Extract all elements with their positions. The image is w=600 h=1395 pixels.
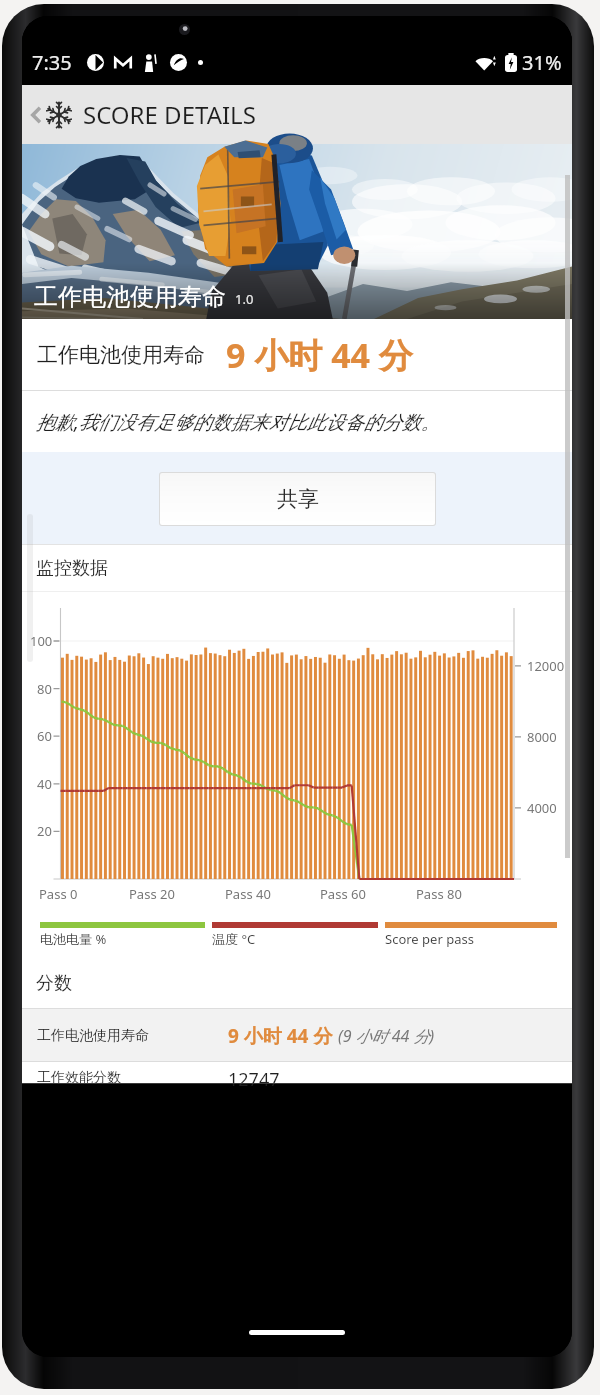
- staticText: 工作电池使用寿命: [34, 282, 226, 312]
- staticText: 监控数据: [36, 557, 108, 580]
- staticText: 31%: [522, 49, 562, 76]
- staticText: 抱歉,我们没有足够的数据来对比此设备的分数。: [36, 409, 440, 435]
- staticText: 100: [30, 632, 53, 650]
- staticText: 12000: [527, 657, 565, 675]
- staticText: 4000: [527, 799, 557, 817]
- staticText: SCORE DETAILS: [83, 98, 256, 131]
- staticText: Pass 60: [320, 885, 366, 903]
- staticText: 分数: [36, 972, 72, 995]
- button[interactable]: 工作电池使用寿命: [22, 1009, 572, 1062]
- staticText: (9 小时 44 分): [338, 1025, 435, 1047]
- staticText: 9 小时 44 分: [228, 1023, 333, 1049]
- staticText: 共享: [277, 486, 319, 512]
- staticText: Pass 0: [39, 885, 78, 903]
- staticText: 电池电量 %: [40, 930, 107, 948]
- staticText: 7:35: [32, 49, 72, 76]
- staticText: Pass 20: [129, 885, 175, 903]
- staticText: 40: [37, 775, 52, 793]
- other: Back: [27, 106, 45, 124]
- staticText: 12747: [228, 1067, 280, 1088]
- staticText: 温度 °C: [212, 930, 256, 948]
- staticText: 工作效能分数: [37, 1069, 121, 1087]
- staticText: 工作电池使用寿命: [37, 342, 205, 368]
- staticText: 9 小时 44 分: [226, 332, 413, 378]
- staticText: 工作电池使用寿命: [37, 1027, 149, 1045]
- staticText: 60: [37, 727, 52, 745]
- staticText: 20: [37, 822, 52, 840]
- button[interactable]: 工作效能分数: [22, 1062, 572, 1083]
- staticText: Score per pass: [385, 930, 474, 948]
- staticText: 80: [37, 680, 52, 698]
- staticText: 1.0: [235, 290, 254, 308]
- staticText: Pass 80: [416, 885, 462, 903]
- staticText: 8000: [527, 728, 557, 746]
- button[interactable]: Back: [22, 85, 572, 144]
- staticText: Pass 40: [225, 885, 271, 903]
- button[interactable]: 共享: [160, 473, 435, 525]
